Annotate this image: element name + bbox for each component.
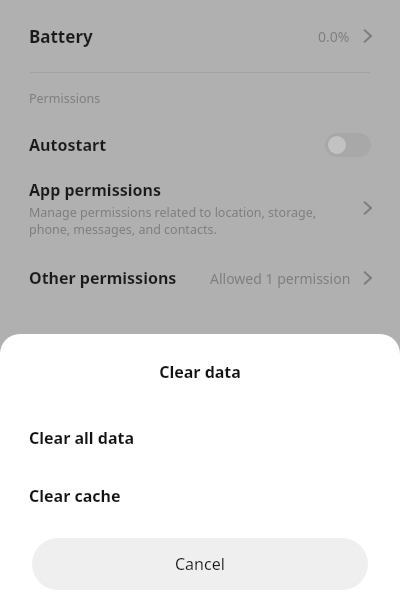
button[interactable]: Clear cache [0,472,400,520]
staticText: Autostart [29,134,107,156]
staticText: 0.0% [318,27,350,46]
staticText: Battery [29,25,93,48]
button[interactable]: Clear all data [0,414,400,462]
button[interactable]: Cancel [32,538,368,590]
staticText: Permissions [29,90,101,107]
staticText: Cancel [175,553,225,575]
staticText: Other permissions [29,267,177,289]
staticText: App permissions [29,179,161,201]
button[interactable]: App permissions [0,179,400,237]
staticText: Clear data [0,361,400,383]
button[interactable]: Other permissions [0,261,400,295]
staticText: Allowed 1 permission [210,269,351,288]
button[interactable]: Autostart [0,121,400,169]
staticText: Manage permissions related to location, … [29,204,317,237]
staticText: Clear cache [29,485,121,507]
staticText: Clear all data [29,427,134,449]
button[interactable]: Battery [0,0,400,72]
